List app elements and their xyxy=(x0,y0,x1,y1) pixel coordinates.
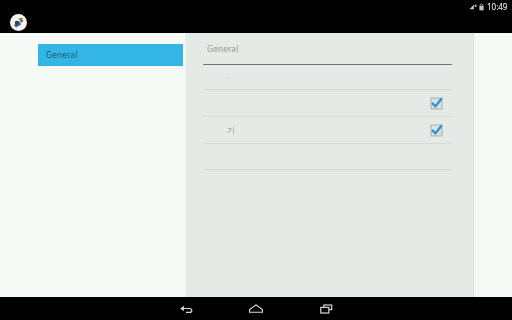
staticText: 기 xyxy=(227,125,235,135)
button[interactable]: Recent apps xyxy=(306,297,346,320)
button[interactable]: 기 xyxy=(186,117,474,143)
staticText: General xyxy=(46,49,78,61)
button[interactable]: App icon xyxy=(10,14,27,31)
button[interactable]: Toggle setting xyxy=(430,124,443,137)
button[interactable]: Back xyxy=(166,297,206,320)
button[interactable]: Toggle setting xyxy=(186,90,474,116)
staticText: General xyxy=(207,43,239,55)
staticText: 10:49 xyxy=(487,1,508,12)
staticText: · xyxy=(227,72,230,83)
button[interactable]: General xyxy=(38,44,183,66)
button[interactable]: Home xyxy=(236,297,276,320)
button[interactable]: Toggle setting xyxy=(430,97,443,110)
